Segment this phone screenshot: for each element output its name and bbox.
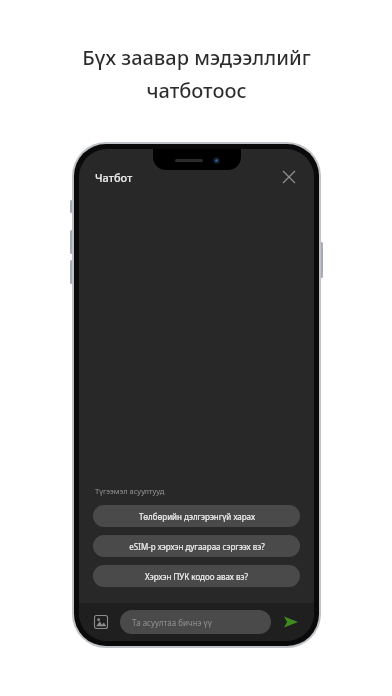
- button[interactable]: eSIM-р хэрхэн дугаараа сэргээх вэ?: [93, 535, 300, 557]
- staticText: чатботоос: [146, 77, 247, 104]
- staticText: Та асуултаа бичнэ үү: [132, 617, 212, 628]
- staticText: Хэрхэн ПУК кодоо авах вэ?: [145, 571, 248, 582]
- staticText: Чатбот: [95, 170, 133, 185]
- button[interactable]: Send: [280, 611, 302, 633]
- button[interactable]: Close: [278, 166, 300, 188]
- button[interactable]: Та асуултаа бичнэ үү: [120, 610, 271, 634]
- staticText: Төлбөрийн дэлгэрэнгүй харах: [139, 511, 255, 522]
- staticText: Түгээмэл асуултууд: [95, 486, 165, 496]
- staticText: Бүх заавар мэдээллийг: [82, 44, 311, 71]
- button[interactable]: Attach image: [91, 612, 111, 632]
- staticText: eSIM-р хэрхэн дугаараа сэргээх вэ?: [129, 541, 265, 552]
- button[interactable]: Хэрхэн ПУК кодоо авах вэ?: [93, 565, 300, 587]
- button[interactable]: Төлбөрийн дэлгэрэнгүй харах: [93, 505, 300, 527]
